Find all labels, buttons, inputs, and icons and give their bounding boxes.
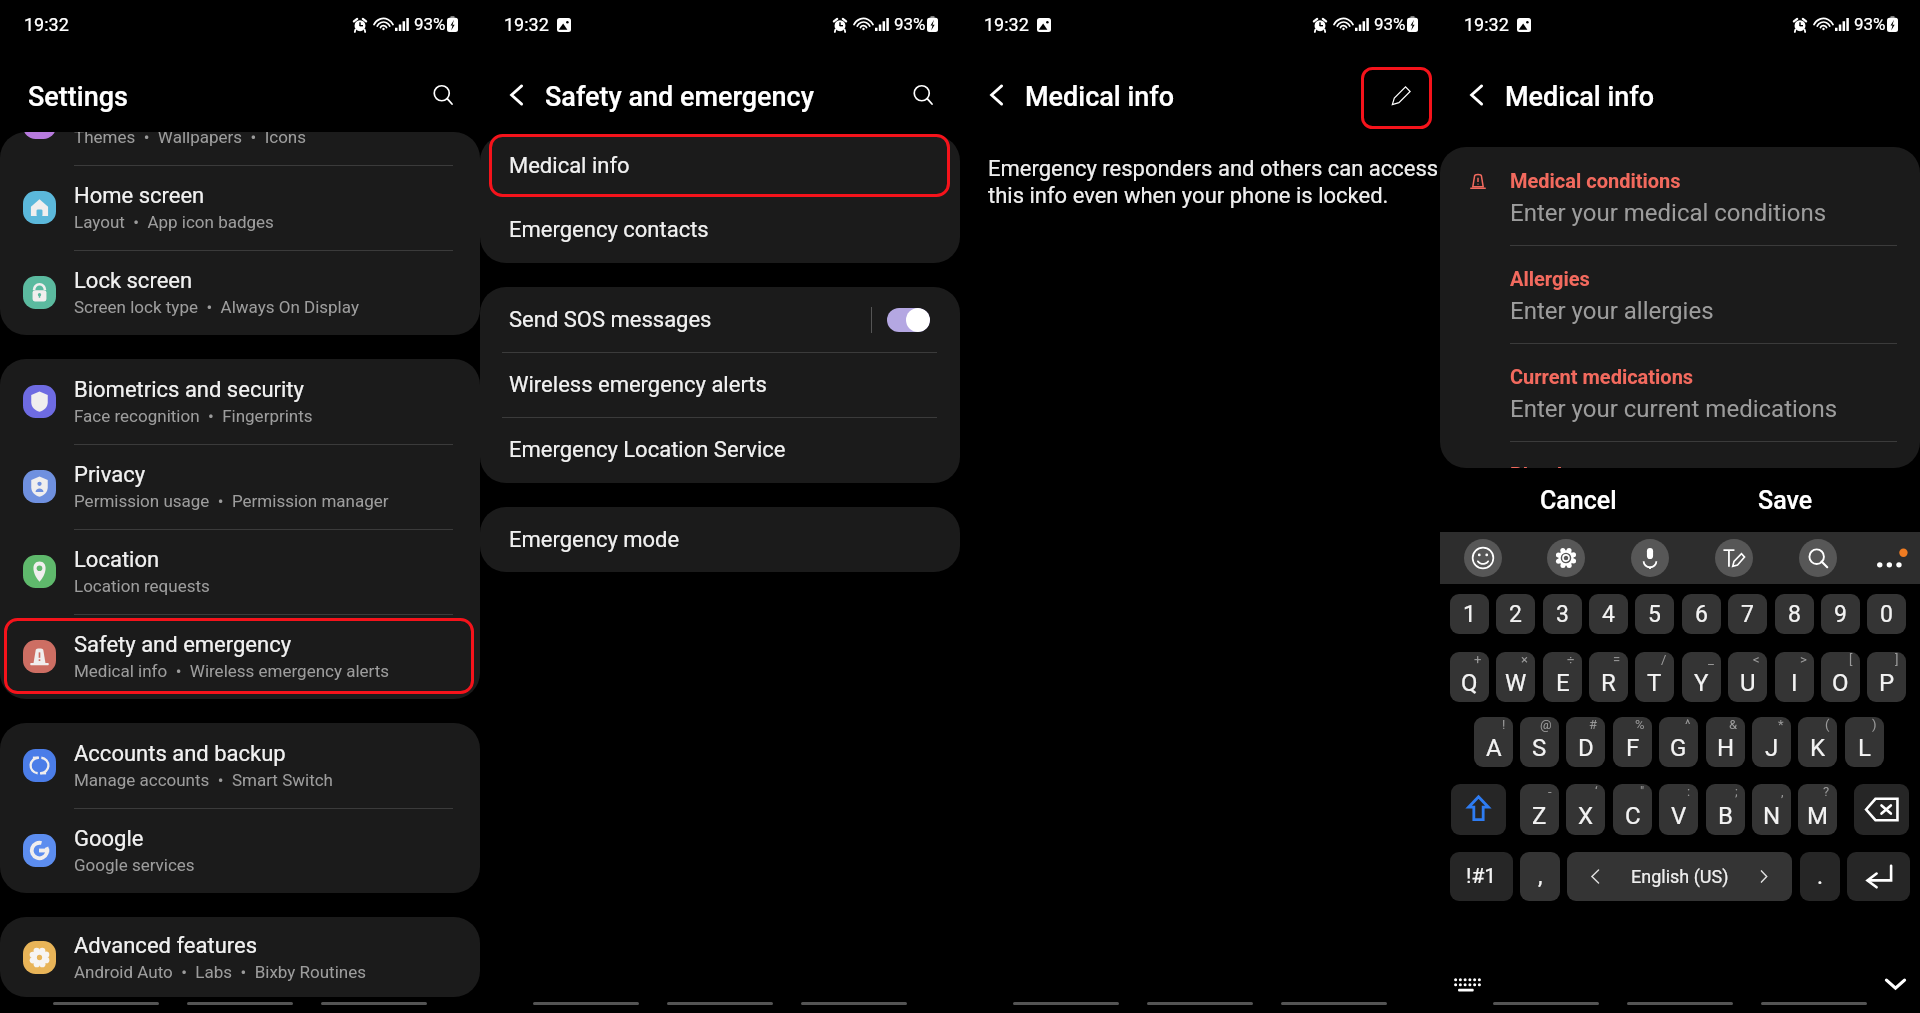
button[interactable]: Send SOS messages <box>480 287 960 352</box>
button[interactable]: Current medications <box>1440 343 1920 441</box>
button[interactable]: 6 <box>1682 594 1721 634</box>
button[interactable]: 1 <box>1450 594 1489 634</box>
button[interactable]: Biometrics and security <box>0 359 480 444</box>
button[interactable]: Location <box>0 529 480 614</box>
button[interactable]: F <box>1613 717 1652 767</box>
staticText: ) <box>1872 717 1877 732</box>
button[interactable]: 4 <box>1589 594 1628 634</box>
button[interactable]: Back <box>1453 71 1501 119</box>
staticText: Advanced features <box>74 933 258 959</box>
staticText: @ <box>1540 717 1552 732</box>
button[interactable]: Z <box>1520 784 1559 835</box>
button[interactable]: More options <box>1874 545 1906 577</box>
button[interactable]: English (US) language <box>1567 852 1792 901</box>
button[interactable]: , <box>1520 852 1560 901</box>
button[interactable]: X <box>1566 784 1605 835</box>
button[interactable]: M <box>1798 784 1837 835</box>
button[interactable]: 7 <box>1728 594 1767 634</box>
button[interactable]: H <box>1706 717 1745 767</box>
staticText: Allergies <box>1510 267 1590 290</box>
staticText: Medical info • Wireless emergency alerts <box>74 661 390 681</box>
staticText: Google services <box>74 855 195 875</box>
button[interactable]: W <box>1496 652 1535 702</box>
button[interactable]: Keyboard layout <box>1448 966 1490 1002</box>
staticText: 4 <box>1602 601 1615 628</box>
button[interactable]: A <box>1474 717 1513 767</box>
button[interactable]: G <box>1659 717 1698 767</box>
button[interactable]: Medical conditions <box>1440 147 1920 245</box>
button[interactable]: Medical info <box>480 135 960 197</box>
button[interactable]: T <box>1635 652 1674 702</box>
button[interactable]: Lock screen <box>0 250 480 335</box>
button[interactable]: Cancel <box>1488 476 1668 524</box>
button[interactable]: 0 <box>1867 594 1906 634</box>
button[interactable]: L <box>1845 717 1884 767</box>
button[interactable]: Emergency contacts <box>480 197 960 263</box>
button[interactable]: Emergency Location Service <box>480 417 960 483</box>
button[interactable]: Privacy <box>0 444 480 529</box>
button[interactable]: I <box>1775 652 1814 702</box>
button[interactable]: C <box>1613 784 1652 835</box>
button[interactable]: Wireless emergency alerts <box>480 352 960 417</box>
button[interactable]: S <box>1520 717 1559 767</box>
button[interactable]: O <box>1821 652 1860 702</box>
staticText: Medical info <box>509 153 630 179</box>
staticText: C <box>1625 802 1641 830</box>
button[interactable]: Handwriting <box>1715 539 1753 577</box>
button[interactable]: Accounts and backup <box>0 723 480 808</box>
staticText: Send SOS messages <box>509 307 712 333</box>
button[interactable]: Y <box>1682 652 1721 702</box>
button[interactable]: V <box>1659 784 1698 835</box>
staticText: Enter your current medications <box>1510 395 1838 423</box>
staticText: " <box>1640 784 1645 799</box>
button[interactable]: 2 <box>1496 594 1535 634</box>
button[interactable]: Emergency mode <box>480 507 960 572</box>
staticText: Google <box>74 826 144 852</box>
button[interactable]: U <box>1728 652 1767 702</box>
button[interactable]: Hide keyboard <box>1878 966 1916 1002</box>
button[interactable]: Safety and emergency <box>0 614 480 699</box>
button[interactable]: Send SOS messages toggle <box>887 308 930 332</box>
button[interactable]: Backspace <box>1854 784 1909 835</box>
button[interactable]: Shift <box>1451 784 1506 835</box>
staticText: Safety and emergency <box>74 632 292 658</box>
staticText: Safety and emergency <box>545 81 814 113</box>
staticText: 2 <box>1509 601 1522 628</box>
button[interactable]: B <box>1706 784 1745 835</box>
button[interactable]: . <box>1800 852 1840 901</box>
button[interactable]: Back <box>493 71 541 119</box>
button[interactable]: !#1 <box>1450 852 1513 901</box>
button[interactable]: 5 <box>1635 594 1674 634</box>
button[interactable]: Search <box>1799 539 1837 577</box>
button[interactable]: 8 <box>1775 594 1814 634</box>
staticText: G <box>1670 734 1687 762</box>
button[interactable]: Themes <box>0 132 480 165</box>
button[interactable]: Search <box>420 72 466 118</box>
button[interactable]: Q <box>1450 652 1489 702</box>
staticText: ? <box>1823 784 1830 799</box>
button[interactable]: E <box>1543 652 1582 702</box>
button[interactable]: Voice input <box>1631 539 1669 577</box>
button[interactable]: Blood type <box>1440 441 1920 468</box>
button[interactable]: Allergies <box>1440 245 1920 343</box>
button[interactable]: P <box>1867 652 1906 702</box>
button[interactable]: J <box>1752 717 1791 767</box>
button[interactable]: R <box>1589 652 1628 702</box>
button[interactable]: 9 <box>1821 594 1860 634</box>
staticText: O <box>1832 669 1849 697</box>
button[interactable]: N <box>1752 784 1791 835</box>
button[interactable]: Save <box>1705 476 1865 524</box>
button[interactable]: Edit <box>1373 74 1421 122</box>
button[interactable]: Enter <box>1847 852 1910 901</box>
button[interactable]: Back <box>973 71 1021 119</box>
button[interactable]: Emoji <box>1464 539 1502 577</box>
button[interactable]: Search <box>900 72 946 118</box>
button[interactable]: 3 <box>1543 594 1582 634</box>
button[interactable]: Keyboard settings <box>1547 539 1585 577</box>
button[interactable]: Home screen <box>0 165 480 250</box>
button[interactable]: Advanced features <box>0 917 480 997</box>
button[interactable]: Google <box>0 808 480 893</box>
staticText: _ <box>1708 652 1714 667</box>
button[interactable]: K <box>1798 717 1837 767</box>
button[interactable]: D <box>1566 717 1605 767</box>
